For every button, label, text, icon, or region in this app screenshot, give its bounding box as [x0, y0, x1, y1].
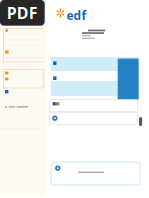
staticText: edf [66, 7, 86, 23]
button[interactable]: PDF [0, 0, 45, 26]
staticText: PDF [7, 2, 38, 23]
